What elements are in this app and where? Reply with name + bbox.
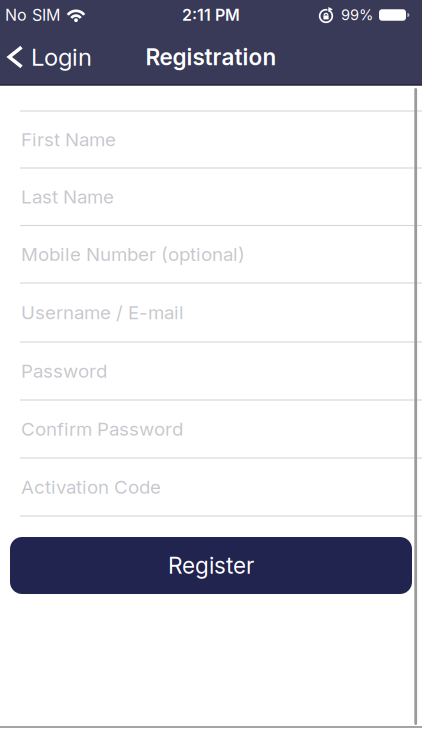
staticText: Last Name xyxy=(21,186,114,208)
button[interactable]: First Name xyxy=(0,111,422,168)
staticText: 99% xyxy=(341,6,373,24)
staticText: No SIM xyxy=(5,6,60,24)
button[interactable]: Activation Code xyxy=(0,458,422,516)
staticText: 2:11 PM xyxy=(182,6,240,24)
staticText: Password xyxy=(21,360,107,382)
button[interactable]: Password xyxy=(0,342,422,400)
staticText: First Name xyxy=(21,128,116,150)
button[interactable]: Register xyxy=(10,537,412,594)
button[interactable]: Back to Login xyxy=(0,43,92,71)
button[interactable]: Mobile Number (optional) xyxy=(0,225,422,283)
staticText: Username / E-mail xyxy=(21,301,184,323)
button[interactable]: Last Name xyxy=(0,168,422,225)
staticText: Mobile Number (optional) xyxy=(21,243,245,265)
button[interactable]: Username / E-mail xyxy=(0,283,422,342)
staticText: Register xyxy=(168,552,254,579)
button[interactable]: Confirm Password xyxy=(0,400,422,458)
staticText: Activation Code xyxy=(21,476,161,498)
staticText: Confirm Password xyxy=(21,418,183,440)
staticText: Registration xyxy=(145,44,276,70)
staticText: Login xyxy=(31,43,92,71)
